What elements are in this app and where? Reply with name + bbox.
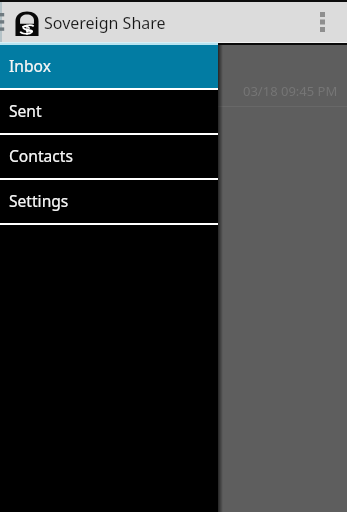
staticText: Sovereign Share xyxy=(44,12,166,34)
button[interactable]: Contacts xyxy=(0,135,218,180)
button[interactable]: More options xyxy=(307,2,337,42)
button[interactable]: Close navigation drawer xyxy=(0,0,347,512)
button[interactable]: Inbox xyxy=(0,45,218,90)
button[interactable]: Sent xyxy=(0,90,218,135)
staticText: Contacts xyxy=(9,145,73,166)
staticText: Inbox xyxy=(9,55,51,76)
button[interactable]: Open navigation drawer xyxy=(0,2,6,42)
button[interactable]: Sovereign Share xyxy=(9,2,179,42)
button[interactable]: Settings xyxy=(0,180,218,225)
staticText: 03/18 09:45 PM xyxy=(243,82,338,100)
staticText: Settings xyxy=(9,190,69,211)
staticText: Sent xyxy=(9,100,42,121)
